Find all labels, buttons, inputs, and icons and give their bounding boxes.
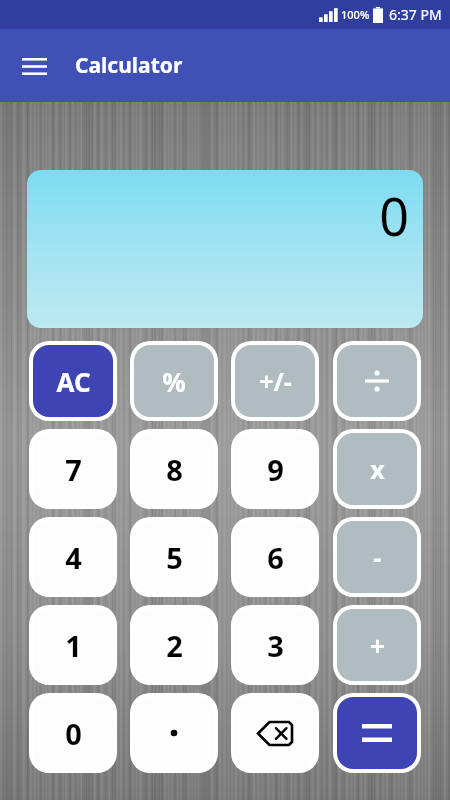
staticText: 1 xyxy=(65,626,82,665)
button[interactable]: Open navigation menu xyxy=(14,46,54,86)
button[interactable]: 3 xyxy=(235,609,315,681)
button[interactable]: 2 xyxy=(134,609,214,681)
staticText: 9 xyxy=(267,450,284,489)
button[interactable]: 1 xyxy=(33,609,113,681)
button[interactable]: 9 xyxy=(235,433,315,505)
staticText: 2 xyxy=(166,626,183,665)
staticText: 6:37 PM xyxy=(389,5,442,24)
button[interactable]: Divide xyxy=(337,345,417,417)
staticText: AC xyxy=(56,364,91,399)
staticText: Calculator xyxy=(75,51,183,80)
button[interactable]: 5 xyxy=(134,521,214,593)
button[interactable]: 0 xyxy=(33,697,113,769)
button[interactable]: AC xyxy=(33,345,113,417)
staticText: 7 xyxy=(65,450,82,489)
staticText: 0 xyxy=(379,180,409,251)
staticText: x xyxy=(370,452,385,486)
staticText: +/- xyxy=(259,364,292,398)
button[interactable]: 8 xyxy=(134,433,214,505)
button[interactable]: Equals xyxy=(337,697,417,769)
button[interactable]: Minus xyxy=(337,521,417,593)
button[interactable]: Plus xyxy=(337,609,417,681)
button[interactable]: Multiply xyxy=(337,433,417,505)
button[interactable]: +/- xyxy=(235,345,315,417)
staticText: - xyxy=(373,540,382,575)
staticText: % xyxy=(162,364,186,399)
button[interactable]: 4 xyxy=(33,521,113,593)
staticText: 5 xyxy=(166,538,183,577)
staticText: + xyxy=(370,628,385,663)
staticText: 0 xyxy=(65,714,82,753)
staticText: 8 xyxy=(166,450,183,489)
button[interactable]: Backspace xyxy=(235,697,315,769)
staticText: 3 xyxy=(267,626,284,665)
button[interactable]: . xyxy=(134,697,214,769)
staticText: 4 xyxy=(65,538,82,577)
button[interactable]: 6 xyxy=(235,521,315,593)
staticText: 6 xyxy=(267,538,284,577)
button[interactable]: 7 xyxy=(33,433,113,505)
staticText: 100% xyxy=(341,7,370,22)
button[interactable]: % xyxy=(134,345,214,417)
